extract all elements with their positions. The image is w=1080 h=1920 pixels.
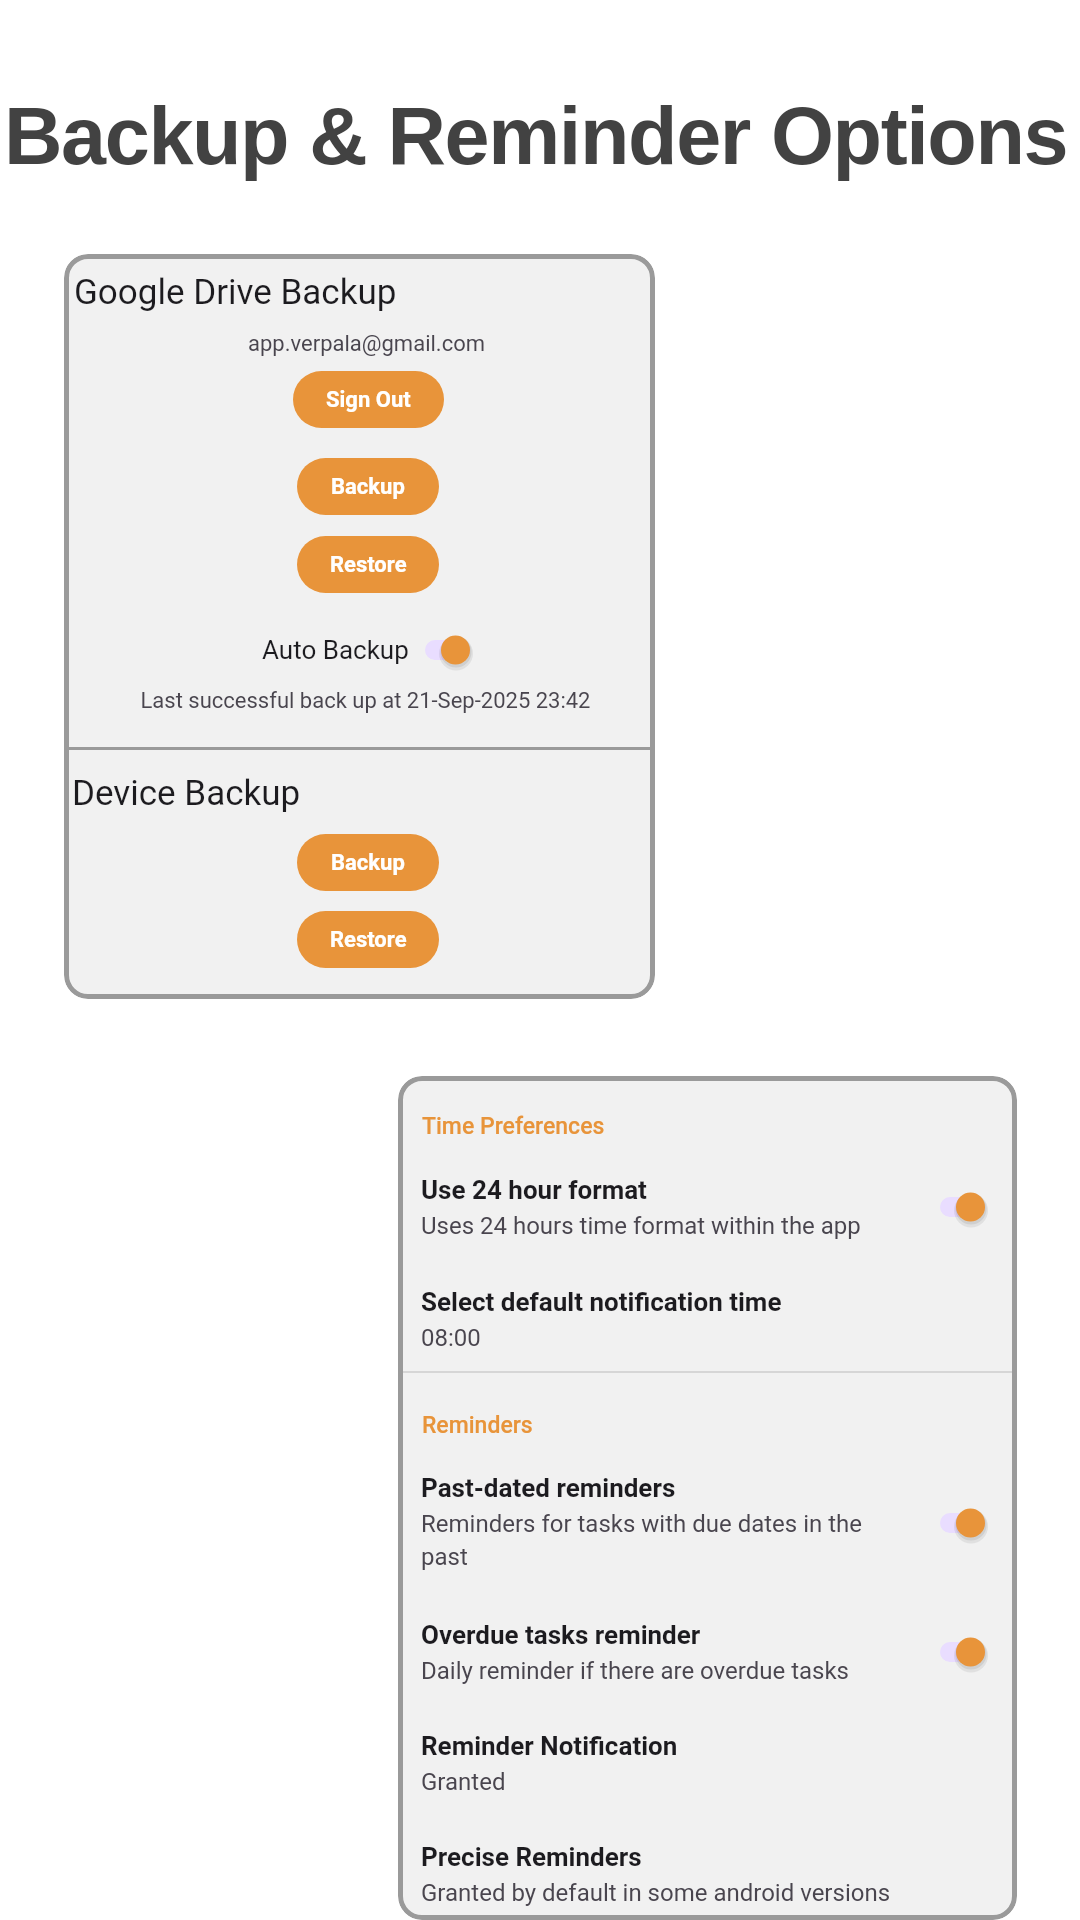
staticText: Granted: [421, 1768, 506, 1796]
staticText: Reminder Notification: [421, 1731, 678, 1761]
button[interactable]: Toggle setting: [940, 1636, 987, 1668]
staticText: Auto Backup: [262, 635, 409, 665]
staticText: Sign Out: [326, 387, 411, 413]
button[interactable]: Backup: [297, 458, 439, 515]
staticText: Time Preferences: [422, 1113, 605, 1140]
button[interactable]: Restore: [297, 911, 439, 968]
staticText: Use 24 hour format: [421, 1175, 647, 1205]
staticText: Device Backup: [72, 773, 301, 814]
button[interactable]: Backup: [297, 834, 439, 891]
staticText: Last successful back up at 21-Sep-2025 2…: [70, 688, 655, 714]
staticText: Reminders: [422, 1412, 533, 1439]
staticText: Precise Reminders: [421, 1842, 642, 1872]
staticText: Restore: [330, 927, 407, 953]
button[interactable]: Restore: [297, 536, 439, 593]
staticText: Uses 24 hours time format within the app: [421, 1212, 861, 1240]
staticText: Granted by default in some android versi…: [421, 1879, 891, 1907]
staticText: Select default notification time: [421, 1287, 782, 1317]
button[interactable]: Toggle setting: [425, 634, 472, 666]
staticText: Restore: [330, 552, 407, 578]
staticText: Daily reminder if there are overdue task…: [421, 1657, 849, 1685]
staticText: app.verpala@gmail.com: [71, 331, 655, 357]
button[interactable]: Sign Out: [293, 371, 444, 428]
staticText: Backup: [331, 850, 405, 876]
staticText: Overdue tasks reminder: [421, 1620, 701, 1650]
staticText: Backup & Reminder Options: [4, 91, 1068, 181]
staticText: Past-dated reminders: [421, 1473, 676, 1503]
staticText: Backup: [331, 474, 405, 500]
staticText: Google Drive Backup: [74, 272, 397, 313]
button[interactable]: Toggle setting: [940, 1191, 987, 1223]
button[interactable]: Toggle setting: [940, 1507, 987, 1539]
staticText: Reminders for tasks with due dates in th…: [421, 1510, 871, 1571]
staticText: 08:00: [421, 1324, 481, 1352]
